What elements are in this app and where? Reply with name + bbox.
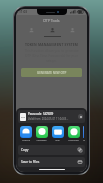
button[interactable]: TXT — [18, 110, 85, 123]
staticText: GENERATE NEW OTP — [37, 71, 67, 75]
button[interactable]: Tokens — [42, 27, 62, 37]
staticText: WhatsApp — [68, 139, 79, 142]
button[interactable]: WhatsApp — [67, 126, 80, 142]
button[interactable]: Scan — [21, 27, 41, 37]
staticText: Messages — [36, 139, 47, 142]
staticText: TXT — [21, 116, 25, 119]
button[interactable]: AirDrop — [19, 126, 32, 142]
button[interactable]: Copy — [18, 145, 85, 155]
staticText: Valid from 2024-05-01 11:04:03… — [28, 117, 69, 121]
button[interactable]: More — [83, 126, 84, 142]
staticText: Passcode 547839 — [28, 112, 54, 116]
button[interactable]: Messages — [35, 126, 48, 142]
staticText: Mail — [55, 139, 60, 142]
button[interactable]: Close — [78, 114, 83, 119]
button[interactable]: Account — [62, 27, 82, 37]
staticText: AirDrop — [22, 139, 30, 142]
staticText: Save to Files — [21, 160, 40, 164]
button[interactable]: Mail — [51, 126, 64, 142]
button[interactable]: GENERATE NEW OTP — [21, 68, 82, 77]
staticText: More — [83, 139, 84, 142]
button[interactable]: Save to Files — [18, 157, 85, 167]
staticText: OTP Tools — [43, 18, 60, 23]
staticText: Copy — [21, 148, 29, 152]
staticText: TOKEN MANAGEMENT SYSTEM — [16, 42, 87, 46]
staticText: 11:03 — [19, 10, 28, 14]
